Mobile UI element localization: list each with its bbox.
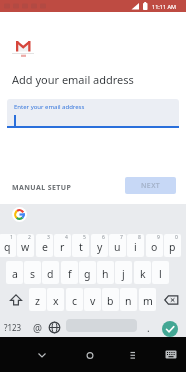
staticText: 2	[28, 234, 31, 241]
button[interactable]: MANUAL SETUP	[6, 180, 78, 196]
button[interactable]	[45, 316, 64, 339]
staticText: x	[53, 294, 59, 308]
button[interactable]	[162, 321, 178, 337]
button[interactable]: z	[29, 288, 46, 311]
staticText: 0	[175, 234, 178, 241]
staticText: 5	[83, 234, 86, 241]
staticText: u	[114, 240, 121, 254]
staticText: 11:11 AM	[152, 3, 176, 10]
button[interactable]: v	[84, 288, 101, 311]
button[interactable]: o	[146, 234, 163, 257]
button[interactable]: t	[72, 234, 89, 257]
button[interactable]: n	[120, 288, 137, 311]
button[interactable]: l	[152, 261, 169, 284]
button[interactable]: k	[134, 261, 151, 284]
staticText: 3	[47, 234, 50, 241]
button[interactable]: p	[164, 234, 181, 257]
staticText: NEXT	[141, 181, 161, 191]
staticText: c	[72, 294, 78, 308]
button[interactable]	[124, 346, 142, 364]
button[interactable]	[81, 346, 99, 364]
button[interactable]: b	[102, 288, 119, 311]
staticText: d	[47, 267, 54, 281]
button[interactable]: h	[97, 261, 114, 284]
staticText: t	[79, 240, 83, 254]
staticText: g	[84, 267, 91, 281]
button[interactable]: x	[47, 288, 64, 311]
button[interactable]: w	[17, 234, 34, 257]
button[interactable]: g	[79, 261, 96, 284]
staticText: z	[35, 294, 40, 308]
staticText: 1	[10, 234, 13, 241]
staticText: a	[12, 267, 18, 281]
staticText: 7	[120, 234, 123, 241]
button[interactable]: c	[66, 288, 83, 311]
staticText: s	[30, 267, 36, 281]
button[interactable]: u	[109, 234, 126, 257]
button[interactable]: .	[139, 316, 158, 339]
button[interactable]: ?123	[1, 316, 24, 339]
staticText: MANUAL SETUP	[12, 183, 72, 193]
staticText: @	[33, 321, 42, 335]
staticText: w	[21, 240, 30, 254]
button[interactable]: Enter your email address	[7, 99, 179, 127]
staticText: Add your email address	[12, 72, 134, 87]
staticText: f	[68, 267, 72, 281]
button[interactable]: q	[0, 234, 16, 257]
staticText: 6	[102, 234, 105, 241]
staticText: p	[169, 240, 176, 254]
button[interactable]: y	[91, 234, 108, 257]
staticText: 4	[65, 234, 68, 241]
button[interactable]	[12, 207, 27, 222]
staticText: .	[147, 321, 150, 335]
staticText: 9	[157, 234, 160, 241]
staticText: y	[97, 240, 103, 254]
button[interactable]	[163, 348, 179, 362]
staticText: k	[140, 267, 146, 281]
staticText: b	[107, 294, 114, 308]
button[interactable]: i	[127, 234, 144, 257]
staticText: ?123	[4, 322, 22, 333]
button[interactable]: s	[24, 261, 41, 284]
button[interactable]: m	[139, 288, 156, 311]
staticText: m	[143, 294, 153, 308]
staticText: e	[42, 240, 48, 254]
button[interactable]	[2, 288, 27, 311]
staticText: l	[159, 267, 162, 281]
staticText: Enter your email address	[14, 103, 85, 111]
button[interactable]: j	[115, 261, 132, 284]
button[interactable]	[33, 346, 51, 364]
staticText: h	[102, 267, 109, 281]
button[interactable]: NEXT	[125, 177, 176, 194]
button[interactable]: f	[61, 261, 78, 284]
staticText: v	[90, 294, 96, 308]
button[interactable]: d	[42, 261, 59, 284]
button[interactable]: r	[54, 234, 71, 257]
button[interactable]: e	[36, 234, 53, 257]
staticText: n	[125, 294, 132, 308]
staticText: 8	[138, 234, 141, 241]
staticText: r	[60, 240, 65, 254]
button[interactable]	[158, 288, 184, 311]
staticText: j	[122, 267, 125, 281]
staticText: q	[4, 240, 11, 254]
staticText: o	[151, 240, 158, 254]
button[interactable]: @	[28, 316, 46, 339]
staticText: i	[134, 240, 137, 254]
button[interactable]: a	[6, 261, 23, 284]
